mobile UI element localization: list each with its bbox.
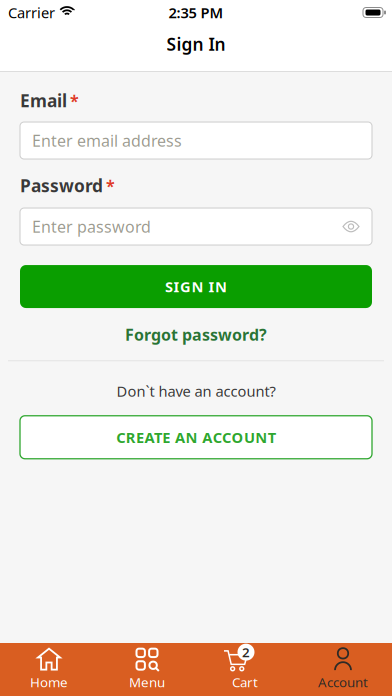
staticText: Forgot password?: [125, 324, 267, 345]
staticText: Enter email address: [32, 130, 182, 151]
button[interactable]: 2: [196, 648, 294, 691]
staticText: Don`t have an account?: [116, 381, 275, 401]
button[interactable]: Forgot password?: [20, 324, 372, 345]
staticText: CREATE AN ACCOUNT: [116, 427, 276, 447]
staticText: Enter password: [32, 216, 151, 237]
staticText: Home: [30, 673, 68, 691]
staticText: SIGN IN: [165, 277, 227, 296]
button[interactable]: Menu: [98, 648, 196, 691]
staticText: *: [106, 175, 115, 196]
textField[interactable]: Enter email address: [32, 130, 359, 151]
staticText: Account: [318, 673, 368, 691]
button[interactable]: CREATE AN ACCOUNT: [20, 416, 372, 459]
staticText: 2: [242, 643, 250, 661]
staticText: Menu: [129, 673, 165, 691]
button[interactable]: SIGN IN: [20, 265, 372, 308]
staticText: Email: [20, 89, 67, 112]
button[interactable]: Show password: [343, 221, 359, 232]
textField[interactable]: Enter password: [32, 216, 343, 237]
staticText: Sign In: [166, 32, 225, 55]
staticText: Carrier: [8, 3, 55, 22]
button[interactable]: Home: [0, 648, 98, 691]
staticText: Cart: [232, 673, 258, 691]
staticText: 2:35 PM: [168, 3, 223, 22]
staticText: *: [70, 90, 79, 111]
staticText: Password: [20, 174, 103, 197]
button[interactable]: Account: [294, 648, 392, 691]
